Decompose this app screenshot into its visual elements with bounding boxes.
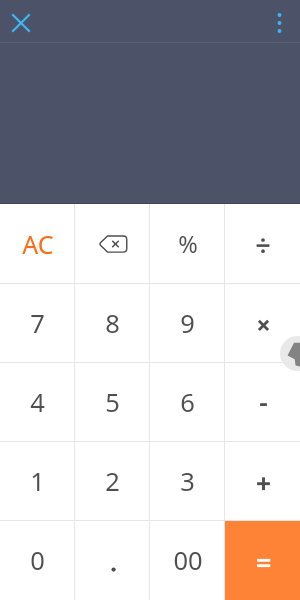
button[interactable]: Divide xyxy=(225,204,300,284)
staticText: AC xyxy=(22,227,54,261)
button[interactable]: 0 xyxy=(0,521,75,600)
button[interactable]: Equals xyxy=(225,521,300,600)
button[interactable]: AC xyxy=(0,204,75,284)
button[interactable]: 2 xyxy=(75,442,150,521)
staticText: 3 xyxy=(180,464,195,499)
staticText: 1 xyxy=(30,464,45,499)
button[interactable]: Minus xyxy=(225,363,300,442)
button[interactable]: 8 xyxy=(75,284,150,363)
button[interactable]: 7 xyxy=(0,284,75,363)
button[interactable]: Multiply xyxy=(225,284,300,363)
button[interactable]: 3 xyxy=(150,442,225,521)
staticText: 2 xyxy=(105,464,120,499)
staticText: 6 xyxy=(180,385,195,420)
button[interactable]: Open panel xyxy=(280,336,300,371)
staticText: 0 xyxy=(30,543,45,578)
staticText: 7 xyxy=(30,306,45,341)
button[interactable]: % xyxy=(150,204,225,284)
staticText: 4 xyxy=(30,385,45,420)
button[interactable]: More options xyxy=(258,2,300,44)
staticText: 8 xyxy=(105,306,120,341)
button[interactable]: 00 xyxy=(150,521,225,600)
button[interactable]: 9 xyxy=(150,284,225,363)
button[interactable]: Backspace xyxy=(75,204,150,284)
button[interactable]: Close xyxy=(0,2,42,44)
button[interactable]: 4 xyxy=(0,363,75,442)
button[interactable]: 1 xyxy=(0,442,75,521)
button[interactable]: Decimal point xyxy=(75,521,150,600)
button[interactable]: Plus xyxy=(225,442,300,521)
staticText: % xyxy=(178,228,198,260)
staticText: 5 xyxy=(105,385,120,420)
staticText: 9 xyxy=(180,306,195,341)
button[interactable]: 6 xyxy=(150,363,225,442)
staticText: 00 xyxy=(173,543,203,578)
button[interactable]: 5 xyxy=(75,363,150,442)
